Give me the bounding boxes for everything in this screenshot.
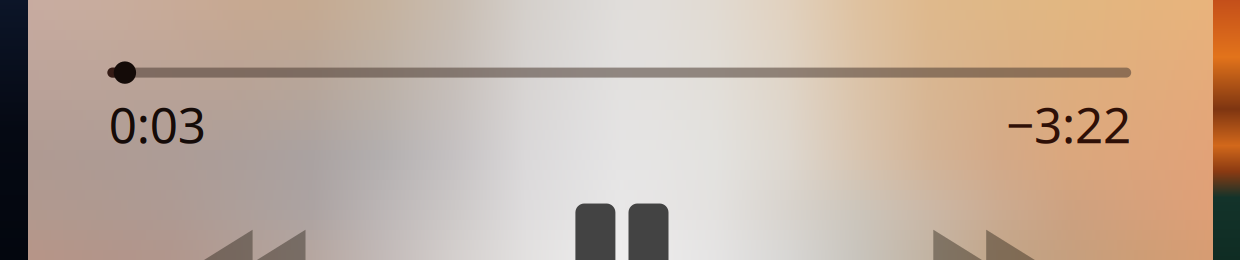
button[interactable]: Playback position — [0, 0, 1240, 260]
staticText: 0:03 — [109, 91, 206, 157]
button[interactable]: Previous track — [198, 230, 305, 260]
button[interactable]: Pause — [575, 203, 668, 260]
staticText: −3:22 — [1006, 91, 1131, 157]
button[interactable]: Next track — [933, 230, 1041, 260]
